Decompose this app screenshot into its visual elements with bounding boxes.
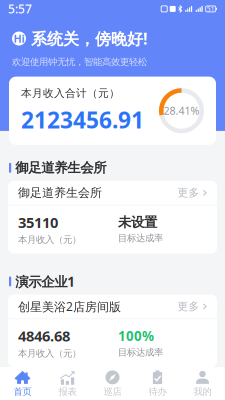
staticText: 本月收入（元） <box>18 348 81 359</box>
staticText: 28.41% <box>163 104 199 118</box>
staticText: 目标达成率 <box>118 232 163 244</box>
staticText: 5:57 <box>8 1 32 17</box>
staticText: 创星美浴2店房间版 <box>18 298 121 314</box>
staticText: 未设置 <box>118 214 157 230</box>
button[interactable]: 巡店 <box>90 367 135 400</box>
staticText: 100% <box>118 327 154 345</box>
button[interactable]: 我的 <box>180 367 225 400</box>
staticText: 巡店 <box>103 386 121 397</box>
button[interactable]: 创星美浴2店房间版 <box>8 294 217 318</box>
staticText: 我的 <box>193 386 211 397</box>
staticText: 更多 <box>178 300 200 313</box>
staticText: 待办 <box>148 386 166 397</box>
staticText: 首页 <box>13 386 31 397</box>
staticText: 本月收入合计（元） <box>21 87 120 100</box>
button[interactable]: 待办 <box>135 367 180 400</box>
staticText: 御足道养生会所 <box>18 185 102 200</box>
staticText: Hi <box>13 31 24 46</box>
staticText: 2123456.91 <box>21 105 144 135</box>
staticText: 本月收入（元） <box>18 234 81 245</box>
staticText: 系统关，傍晚好! <box>31 28 148 49</box>
staticText: 51 <box>207 4 215 13</box>
staticText: 目标达成率 <box>118 347 163 358</box>
staticText: 更多 <box>178 186 200 199</box>
staticText: 御足道养生会所 <box>15 160 106 176</box>
staticText: 35110 <box>18 212 58 232</box>
button[interactable]: 御足道养生会所 <box>8 181 217 205</box>
button[interactable]: 首页 <box>0 367 45 400</box>
staticText: 4846.68 <box>18 326 70 346</box>
staticText: 欢迎使用钟无忧，智能高效更轻松 <box>12 56 147 68</box>
staticText: 演示企业1 <box>15 273 75 290</box>
button[interactable]: 报表 <box>45 367 90 400</box>
staticText: 报表 <box>58 386 76 397</box>
